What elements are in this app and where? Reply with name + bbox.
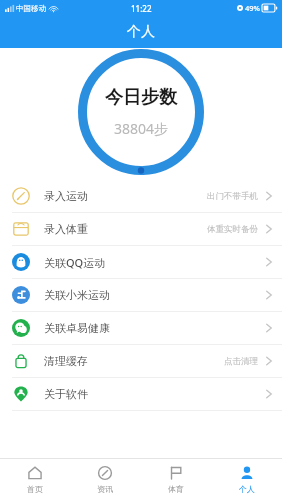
button[interactable]: 关联小米运动 [0, 279, 282, 311]
staticText: 关联小米运动 [44, 288, 110, 302]
staticText: 中国移动 [16, 4, 46, 13]
staticText: 录入运动 [44, 189, 88, 203]
button[interactable]: 录入体重 [0, 213, 282, 245]
button[interactable]: 个人 [211, 459, 282, 500]
staticText: 今日步数 [105, 86, 177, 109]
staticText: 点击清理 [224, 356, 258, 367]
button[interactable]: 录入运动 [0, 180, 282, 212]
staticText: 个人 [127, 23, 155, 41]
staticText: 关于软件 [44, 387, 88, 401]
staticText: 首页 [27, 484, 43, 494]
staticText: 38804步 [114, 119, 169, 138]
button[interactable]: 体育 [140, 459, 211, 500]
button[interactable]: 关联QQ运动 [0, 246, 282, 278]
staticText: 录入体重 [44, 222, 88, 236]
button[interactable]: 关联卓易健康 [0, 312, 282, 344]
button[interactable]: 资讯 [70, 459, 140, 500]
staticText: 资讯 [97, 484, 113, 494]
staticText: 个人 [239, 484, 255, 494]
staticText: 11:22 [131, 3, 152, 14]
button[interactable]: 清理缓存 [0, 345, 282, 377]
staticText: 49% [245, 3, 260, 13]
staticText: 关联卓易健康 [44, 321, 110, 335]
staticText: 体重实时备份 [207, 224, 258, 235]
staticText: 出门不带手机 [207, 191, 258, 202]
staticText: 清理缓存 [44, 354, 88, 368]
staticText: 体育 [168, 484, 184, 494]
staticText: 关联QQ运动 [44, 255, 106, 270]
button[interactable]: 关于软件 [0, 378, 282, 410]
button[interactable]: 首页 [0, 459, 70, 500]
